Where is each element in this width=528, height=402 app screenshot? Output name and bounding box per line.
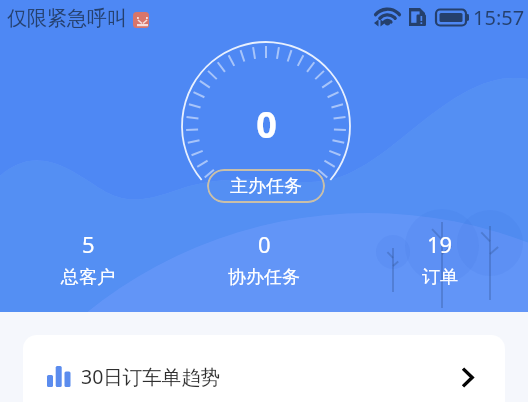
- staticText: 仅限紧急呼叫: [7, 6, 127, 31]
- staticText: 0: [256, 100, 277, 149]
- button[interactable]: 19: [352, 229, 528, 289]
- staticText: 15:57: [473, 4, 525, 31]
- button[interactable]: 0: [176, 229, 352, 289]
- other: More: [461, 367, 475, 387]
- button[interactable]: 5: [0, 229, 176, 289]
- staticText: 0: [258, 229, 271, 259]
- staticText: 19: [427, 229, 453, 259]
- button[interactable]: 30日订车单趋势: [23, 335, 505, 402]
- staticText: 协办任务: [228, 266, 300, 289]
- staticText: 主办任务: [230, 175, 302, 198]
- other: Status icons: [0, 0, 528, 34]
- staticText: 订单: [422, 266, 458, 289]
- staticText: 5: [82, 229, 95, 259]
- button[interactable]: 主办任务: [207, 169, 325, 203]
- staticText: 总客户: [61, 266, 115, 289]
- staticText: 30日订车单趋势: [81, 363, 221, 390]
